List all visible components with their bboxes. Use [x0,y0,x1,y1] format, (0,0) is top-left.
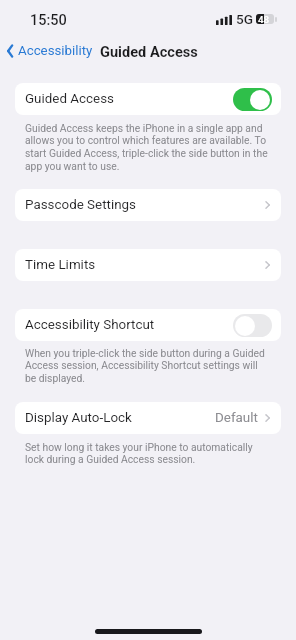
button[interactable]: Guided Access [15,83,281,115]
staticText: Passcode Settings [25,197,136,213]
button[interactable]: Passcode Settings [15,189,281,221]
staticText: 48 [258,14,270,24]
button[interactable]: Accessibility [0,43,97,59]
staticText: Guided Access [100,43,198,60]
staticText: Time Limits [25,257,96,273]
staticText: Accessibility Shortcut [25,317,155,333]
button[interactable]: Display Auto-Lock [15,402,281,434]
staticText: 15:50 [30,12,67,29]
staticText: Guided Access keeps the iPhone in a sing… [25,122,271,172]
staticText: Set how long it takes your iPhone to aut… [25,441,271,465]
staticText: Display Auto-Lock [25,410,132,426]
button[interactable]: Accessibility Shortcut [15,309,281,341]
staticText: When you triple-click the side button du… [25,347,271,384]
staticText: 5G [236,11,253,27]
button[interactable]: Toggle on [233,88,272,111]
staticText: Guided Access [25,91,114,107]
button[interactable]: Time Limits [15,249,281,281]
staticText: Default [215,410,258,426]
staticText: Accessibility [18,43,93,59]
button[interactable]: Toggle off [233,314,272,337]
